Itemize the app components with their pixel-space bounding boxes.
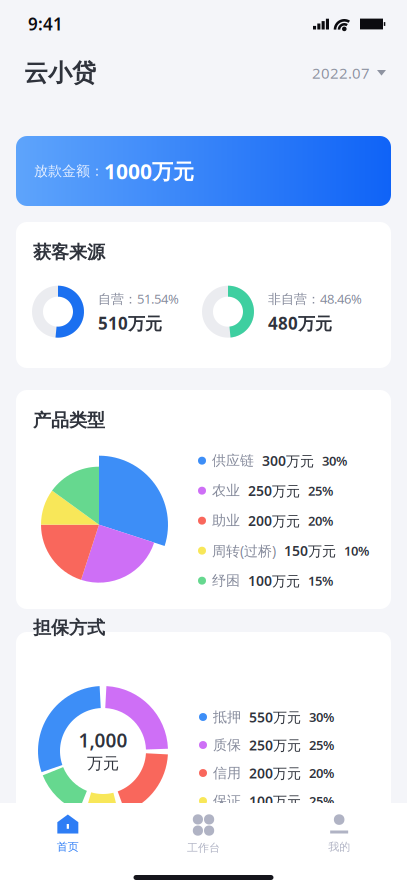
- staticText: 产品类型: [33, 409, 105, 432]
- staticText: 150万元: [284, 541, 336, 560]
- staticText: 保证: [213, 792, 241, 810]
- staticText: 10%: [344, 542, 369, 559]
- staticText: 30%: [309, 708, 334, 726]
- staticText: 云小贷: [24, 58, 96, 88]
- staticText: 30%: [322, 452, 347, 469]
- button[interactable]: 我的: [271, 803, 407, 889]
- staticText: 周转(过桥): [212, 541, 276, 560]
- staticText: 550万元: [249, 707, 301, 727]
- staticText: 担保方式: [33, 616, 105, 639]
- staticText: 9:41: [28, 12, 63, 36]
- staticText: 1,000: [78, 727, 127, 753]
- staticText: 信用: [213, 764, 241, 782]
- staticText: 纾困: [212, 572, 240, 589]
- staticText: 25%: [308, 482, 333, 499]
- staticText: 480万元: [268, 312, 332, 335]
- staticText: 200万元: [249, 763, 301, 783]
- button[interactable]: 工作台: [136, 803, 271, 889]
- staticText: 250万元: [249, 735, 301, 755]
- staticText: 250万元: [248, 481, 300, 500]
- staticText: 20%: [309, 764, 334, 782]
- staticText: 300万元: [262, 451, 314, 470]
- staticText: 2022.07: [312, 63, 370, 83]
- staticText: 20%: [308, 512, 333, 529]
- staticText: 放款金额：: [34, 162, 104, 180]
- staticText: 农业: [212, 482, 240, 499]
- staticText: 自营：51.54%: [98, 290, 179, 307]
- staticText: 200万元: [248, 511, 300, 530]
- button[interactable]: 首页: [0, 803, 136, 889]
- staticText: 25%: [309, 792, 334, 810]
- staticText: 获客来源: [33, 241, 105, 264]
- staticText: 首页: [57, 840, 79, 854]
- staticText: 助业: [212, 512, 240, 529]
- staticText: 非自营：48.46%: [268, 290, 362, 307]
- staticText: 100万元: [249, 791, 301, 811]
- staticText: 15%: [308, 572, 333, 589]
- staticText: 抵押: [213, 708, 241, 726]
- staticText: 万元: [87, 753, 119, 774]
- staticText: 100万元: [248, 571, 300, 590]
- staticText: 510万元: [98, 312, 162, 335]
- staticText: 质保: [213, 736, 241, 754]
- staticText: 1000万元: [104, 157, 194, 185]
- staticText: 供应链: [212, 452, 254, 469]
- staticText: 我的: [328, 840, 350, 854]
- staticText: 工作台: [187, 841, 220, 855]
- staticText: 25%: [309, 736, 334, 754]
- button[interactable]: 2022.07: [310, 53, 388, 93]
